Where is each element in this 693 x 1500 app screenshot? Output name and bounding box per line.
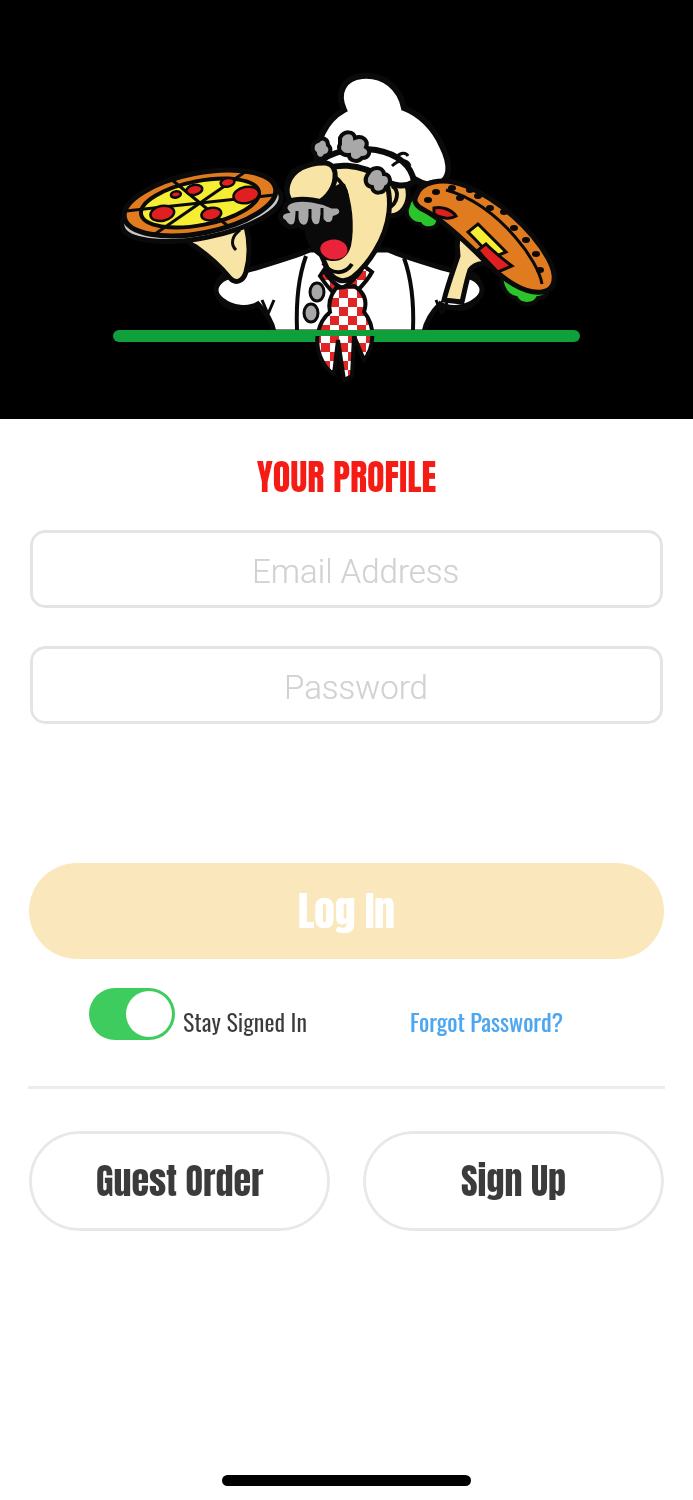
staticText: Log In <box>298 880 395 942</box>
staticText: Guest Order <box>96 1154 264 1208</box>
button[interactable]: Password <box>30 646 663 724</box>
staticText: Stay Signed In <box>183 1003 308 1039</box>
button[interactable]: Sign Up <box>363 1131 664 1231</box>
staticText: Sign Up <box>461 1154 566 1208</box>
staticText: Email Address <box>252 552 460 591</box>
button[interactable]: Guest Order <box>29 1131 330 1231</box>
staticText: Password <box>284 668 428 707</box>
button[interactable]: Forgot Password? <box>406 1003 568 1039</box>
button[interactable]: Stay Signed In toggle <box>89 988 175 1040</box>
button[interactable]: Email Address <box>30 530 663 608</box>
staticText: YOUR PROFILE <box>0 450 693 504</box>
button[interactable]: Log In <box>29 863 664 959</box>
